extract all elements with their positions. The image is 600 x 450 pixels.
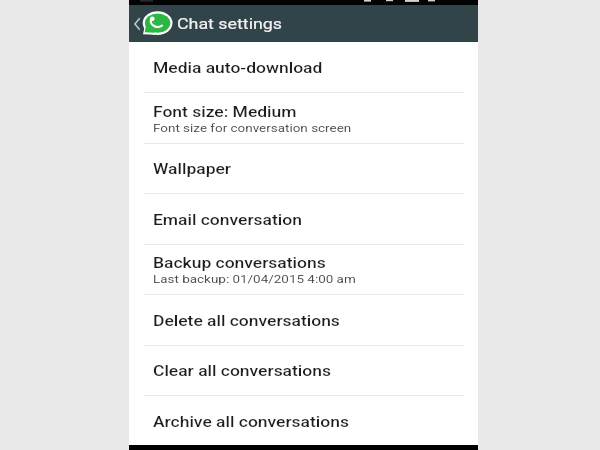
button[interactable]: Media auto-download <box>129 42 478 93</box>
staticText: Font size: Medium <box>153 103 297 121</box>
staticText: Email conversation <box>153 211 302 229</box>
staticText: Media auto-download <box>153 59 323 77</box>
staticText: Wallpaper <box>153 160 231 178</box>
button[interactable]: Font size: Medium <box>129 93 478 144</box>
staticText: Delete all conversations <box>153 312 340 330</box>
button[interactable]: Delete all conversations <box>129 295 478 346</box>
button[interactable]: Clear all conversations <box>129 345 478 396</box>
staticText: Last backup: 01/04/2015 4:00 am <box>153 272 356 286</box>
button[interactable]: Navigate up <box>129 5 173 42</box>
staticText: Backup conversations <box>153 254 327 272</box>
staticText: Clear all conversations <box>153 362 331 380</box>
button[interactable]: Archive all conversations <box>129 396 478 447</box>
staticText: Font size for conversation screen <box>153 121 352 135</box>
staticText: Archive all conversations <box>153 413 350 431</box>
button[interactable]: Wallpaper <box>129 143 478 194</box>
button[interactable]: Email conversation <box>129 194 478 245</box>
button[interactable]: Backup conversations <box>129 244 478 295</box>
staticText: Chat settings <box>177 15 283 33</box>
